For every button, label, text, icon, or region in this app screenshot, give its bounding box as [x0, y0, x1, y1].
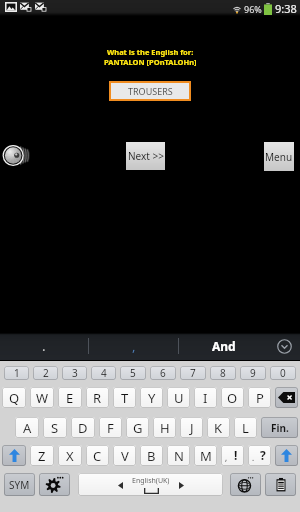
- staticText: U: [174, 389, 184, 407]
- staticText: W: [36, 389, 49, 407]
- button[interactable]: More suggestions: [268, 332, 300, 360]
- button[interactable]: 7: [180, 366, 206, 380]
- button[interactable]: Next >>: [126, 142, 165, 170]
- button[interactable]: A: [15, 417, 39, 438]
- button[interactable]: G: [126, 417, 149, 438]
- button[interactable]: I: [194, 387, 217, 408]
- button[interactable]: Z: [30, 445, 54, 466]
- staticText: F: [107, 419, 114, 437]
- button[interactable]: O: [221, 387, 244, 408]
- staticText: 2: [43, 366, 49, 380]
- staticText: 9:38: [275, 1, 297, 16]
- button[interactable]: Fin.: [261, 417, 298, 438]
- button[interactable]: W: [30, 387, 54, 408]
- button[interactable]: J: [180, 417, 203, 438]
- staticText: A: [23, 419, 32, 437]
- staticText: 96%: [244, 3, 262, 15]
- button[interactable]: R: [86, 387, 109, 408]
- staticText: .: [42, 337, 46, 355]
- button[interactable]: N: [167, 445, 190, 466]
- button[interactable]: 1: [4, 366, 29, 380]
- button[interactable]: SYM: [4, 473, 35, 496]
- staticText: Menu: [265, 150, 293, 164]
- button[interactable]: TROUSERS: [111, 83, 189, 99]
- staticText: 6: [160, 366, 166, 380]
- button[interactable]: H: [153, 417, 176, 438]
- staticText: Y: [148, 389, 156, 407]
- staticText: .: [252, 452, 255, 463]
- button[interactable]: ,: [89, 332, 178, 360]
- button[interactable]: B: [140, 445, 163, 466]
- button[interactable]: And: [179, 332, 268, 360]
- button[interactable]: 9: [240, 366, 266, 380]
- staticText: E: [66, 389, 74, 407]
- staticText: 4: [101, 366, 107, 380]
- staticText: T: [121, 389, 129, 407]
- button[interactable]: V: [113, 445, 136, 466]
- staticText: I: [203, 389, 208, 407]
- staticText: H: [160, 419, 170, 437]
- staticText: 8: [220, 366, 226, 380]
- button[interactable]: Play pronunciation: [2, 144, 30, 167]
- staticText: English(UK): [132, 476, 170, 486]
- button[interactable]: 0: [270, 366, 296, 380]
- button[interactable]: Change language: [230, 473, 261, 496]
- staticText: PANTALON [POnTALOHn]: [104, 57, 197, 67]
- button[interactable]: E: [58, 387, 82, 408]
- button[interactable]: S: [43, 417, 67, 438]
- staticText: 7: [190, 366, 196, 380]
- button[interactable]: F: [99, 417, 122, 438]
- button[interactable]: .: [0, 332, 88, 360]
- staticText: L: [242, 419, 249, 437]
- button[interactable]: C: [86, 445, 109, 466]
- button[interactable]: Backspace: [275, 387, 298, 408]
- staticText: Fin.: [271, 421, 289, 435]
- button[interactable]: 8: [210, 366, 236, 380]
- button[interactable]: 6: [150, 366, 176, 380]
- button[interactable]: Y: [140, 387, 163, 408]
- button[interactable]: Settings: [39, 473, 70, 496]
- button[interactable]: L: [234, 417, 257, 438]
- staticText: SYM: [9, 478, 30, 492]
- staticText: N: [174, 447, 184, 465]
- staticText: G: [133, 419, 143, 437]
- button[interactable]: M: [194, 445, 217, 466]
- staticText: ?: [260, 447, 266, 463]
- staticText: 0: [280, 366, 286, 380]
- button[interactable]: Q: [2, 387, 26, 408]
- button[interactable]: 5: [120, 366, 146, 380]
- staticText: TROUSERS: [128, 85, 173, 97]
- staticText: ,: [225, 452, 228, 463]
- staticText: O: [227, 389, 238, 407]
- button[interactable]: ,: [221, 445, 244, 466]
- staticText: K: [214, 419, 223, 437]
- button[interactable]: 3: [62, 366, 87, 380]
- staticText: Q: [9, 389, 20, 407]
- staticText: 9: [250, 366, 256, 380]
- button[interactable]: .: [248, 445, 271, 466]
- staticText: J: [190, 419, 194, 437]
- button[interactable]: Shift: [275, 445, 298, 466]
- button[interactable]: X: [58, 445, 82, 466]
- staticText: 3: [72, 366, 78, 380]
- button[interactable]: 4: [91, 366, 116, 380]
- button[interactable]: Shift: [2, 445, 26, 466]
- staticText: !: [234, 447, 238, 463]
- button[interactable]: 2: [33, 366, 58, 380]
- staticText: D: [78, 419, 88, 437]
- button[interactable]: K: [207, 417, 230, 438]
- button[interactable]: Menu: [264, 142, 294, 171]
- button[interactable]: P: [248, 387, 271, 408]
- staticText: V: [121, 447, 129, 465]
- button[interactable]: Clipboard: [265, 473, 296, 496]
- staticText: B: [147, 447, 156, 465]
- staticText: P: [256, 389, 264, 407]
- button[interactable]: English(UK): [78, 473, 223, 496]
- staticText: What is the English for:: [107, 47, 194, 57]
- staticText: S: [51, 419, 59, 437]
- button[interactable]: T: [113, 387, 136, 408]
- button[interactable]: D: [71, 417, 95, 438]
- button[interactable]: U: [167, 387, 190, 408]
- staticText: 1: [14, 366, 20, 380]
- staticText: ,: [132, 337, 136, 355]
